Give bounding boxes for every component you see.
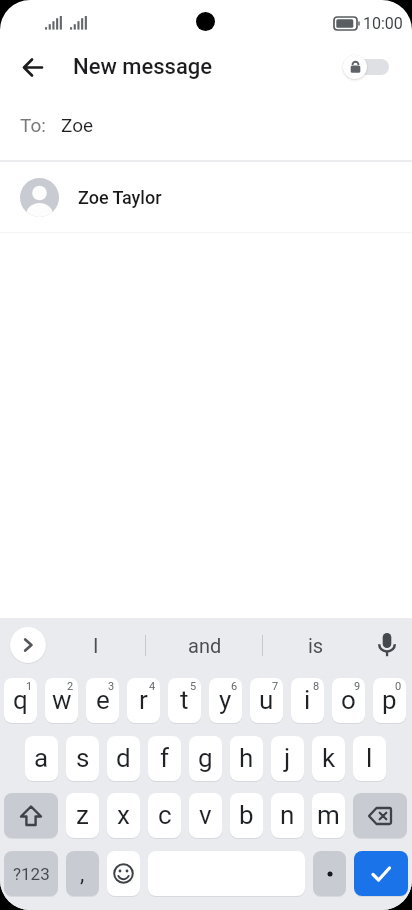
staticText: v — [199, 800, 212, 830]
staticText: 5 — [190, 680, 197, 693]
button[interactable] — [19, 54, 45, 80]
staticText: ?123 — [13, 864, 50, 884]
button[interactable]: r — [127, 678, 160, 723]
button[interactable]: g — [189, 736, 222, 781]
staticText: u — [259, 685, 274, 715]
staticText: 7 — [272, 680, 279, 693]
button[interactable]: o — [332, 678, 365, 723]
button[interactable]: u — [250, 678, 283, 723]
staticText: 3 — [108, 680, 115, 693]
staticText: New message — [73, 54, 213, 80]
staticText: 2 — [67, 680, 74, 693]
staticText: Zoe — [61, 114, 94, 136]
button[interactable]: t — [168, 678, 201, 723]
staticText: 8 — [313, 680, 320, 693]
staticText: i — [304, 685, 311, 715]
staticText: y — [219, 685, 232, 715]
staticText: h — [239, 743, 254, 773]
button[interactable]: Zoe Taylor — [20, 162, 412, 232]
staticText: l — [366, 743, 373, 773]
staticText: e — [96, 685, 110, 715]
button[interactable]: v — [189, 793, 222, 838]
button[interactable]: n — [271, 793, 304, 838]
staticText: 1 — [26, 680, 33, 693]
staticText: 0 — [395, 680, 402, 693]
staticText: g — [198, 743, 213, 773]
button[interactable] — [354, 851, 408, 896]
staticText: 9 — [354, 680, 361, 693]
staticText: 6 — [231, 680, 238, 693]
button[interactable] — [10, 627, 46, 663]
staticText: 10:00 — [363, 14, 403, 33]
button[interactable]: w — [45, 678, 78, 723]
button[interactable]: m — [312, 793, 345, 838]
button[interactable]: a — [25, 736, 58, 781]
button[interactable] — [353, 793, 407, 838]
staticText: t — [180, 685, 189, 715]
button[interactable]: e — [86, 678, 119, 723]
button[interactable]: , — [66, 851, 99, 896]
button[interactable]: z — [66, 793, 99, 838]
staticText: and — [188, 634, 222, 657]
staticText: m — [317, 800, 340, 830]
staticText: j — [284, 743, 291, 773]
button[interactable]: q — [4, 678, 37, 723]
staticText: w — [52, 685, 72, 715]
button[interactable]: To: — [20, 90, 412, 160]
staticText: I — [93, 634, 99, 657]
button[interactable]: k — [312, 736, 345, 781]
staticText: f — [160, 743, 170, 773]
button[interactable]: c — [148, 793, 181, 838]
button[interactable] — [107, 851, 140, 896]
staticText: is — [308, 634, 324, 657]
button[interactable] — [343, 53, 389, 81]
staticText: c — [158, 800, 172, 830]
button[interactable]: h — [230, 736, 263, 781]
staticText: p — [382, 685, 397, 715]
staticText: s — [76, 743, 90, 773]
staticText: k — [322, 743, 336, 773]
staticText: o — [341, 685, 356, 715]
staticText: b — [239, 800, 254, 830]
button[interactable]: ?123 — [4, 851, 58, 896]
staticText: To: — [20, 114, 46, 136]
button[interactable]: j — [271, 736, 304, 781]
staticText: , — [80, 861, 85, 887]
button[interactable]: is — [263, 618, 368, 672]
button[interactable]: i — [291, 678, 324, 723]
button[interactable]: I — [46, 618, 145, 672]
staticText: z — [76, 800, 89, 830]
staticText: Zoe Taylor — [78, 187, 162, 208]
staticText: a — [34, 743, 49, 773]
staticText: x — [117, 800, 130, 830]
button[interactable]: l — [353, 736, 386, 781]
button[interactable]: y — [209, 678, 242, 723]
button[interactable]: b — [230, 793, 263, 838]
staticText: r — [139, 685, 148, 715]
button[interactable]: s — [66, 736, 99, 781]
staticText: 4 — [149, 680, 156, 693]
staticText: d — [116, 743, 131, 773]
staticText: n — [280, 800, 295, 830]
button[interactable]: p — [373, 678, 406, 723]
staticText: q — [13, 685, 28, 715]
button[interactable]: and — [146, 618, 263, 672]
button[interactable] — [313, 851, 346, 896]
button[interactable] — [4, 793, 58, 838]
button[interactable]: d — [107, 736, 140, 781]
button[interactable] — [375, 633, 399, 657]
button[interactable]: f — [148, 736, 181, 781]
button[interactable]: x — [107, 793, 140, 838]
